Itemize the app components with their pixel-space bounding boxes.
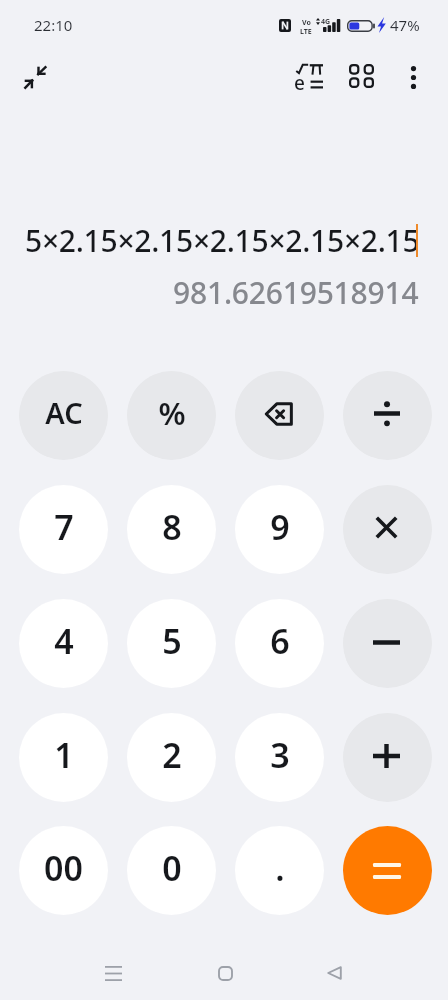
staticText: 5×2.15×2.15×2.15×2.15×2.15 [25, 220, 420, 261]
button[interactable]: More options [389, 53, 437, 101]
button[interactable]: . [235, 826, 324, 915]
staticText: . [275, 845, 285, 891]
button[interactable]: 3 [235, 713, 324, 802]
staticText: e [294, 70, 305, 96]
button[interactable]: Backspace [235, 371, 324, 460]
staticText: 4G [321, 17, 331, 27]
button[interactable]: 0 [127, 826, 216, 915]
staticText: 22:10 [34, 15, 73, 35]
staticText: 2 [162, 732, 182, 778]
button[interactable]: Collapse [11, 53, 59, 101]
button[interactable]: 1 [19, 713, 108, 802]
staticText: 3 [270, 732, 290, 778]
staticText: 00 [44, 845, 83, 891]
staticText: 981.62619518914 [173, 272, 419, 313]
staticText: 47% [390, 15, 420, 35]
button[interactable]: 5 [127, 599, 216, 688]
staticText: 1 [54, 732, 74, 778]
button[interactable]: 7 [19, 485, 108, 574]
button[interactable]: % [127, 371, 216, 460]
staticText: 4 [54, 618, 74, 664]
button[interactable]: 9 [235, 485, 324, 574]
button[interactable]: Scientific mode [285, 53, 333, 101]
staticText: 9 [270, 504, 290, 550]
button[interactable]: 2 [127, 713, 216, 802]
button[interactable]: Recent apps [89, 949, 137, 997]
staticText: Vo [302, 18, 311, 28]
button[interactable]: AC [19, 371, 108, 460]
staticText: % [158, 392, 186, 434]
staticText: LTE [300, 27, 312, 37]
staticText: 0 [162, 845, 182, 891]
staticText: AC [45, 393, 83, 432]
button[interactable]: Multiply [343, 485, 432, 574]
button[interactable]: 00 [19, 826, 108, 915]
button[interactable]: Equals [343, 826, 432, 915]
button[interactable]: Back [310, 949, 358, 997]
button[interactable]: Minus [343, 599, 432, 688]
staticText: 8 [162, 504, 182, 550]
button[interactable]: History [337, 52, 385, 100]
button[interactable]: Divide [343, 371, 432, 460]
button[interactable]: Plus [343, 713, 432, 802]
button[interactable]: Home [201, 949, 249, 997]
button[interactable]: 6 [235, 599, 324, 688]
staticText: 7 [54, 504, 74, 550]
staticText: 5 [162, 618, 182, 664]
staticText: 6 [270, 618, 290, 664]
button[interactable]: 4 [19, 599, 108, 688]
button[interactable]: 8 [127, 485, 216, 574]
